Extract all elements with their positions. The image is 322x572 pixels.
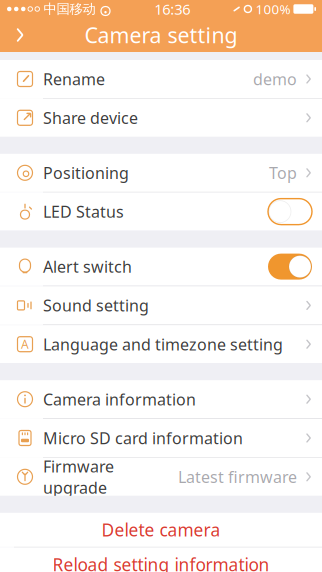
staticText: Top — [269, 162, 297, 183]
button[interactable]: Delete camera — [0, 513, 322, 547]
button[interactable]: Camera information — [0, 380, 322, 418]
staticText: Camera information — [43, 389, 196, 410]
staticText: Micro SD card information — [43, 427, 243, 449]
staticText: Alert switch — [43, 256, 132, 277]
button[interactable]: A — [0, 325, 322, 363]
staticText: Positioning — [43, 162, 129, 183]
button[interactable]: Rename — [0, 60, 322, 98]
button[interactable]: Micro SD card information — [0, 419, 322, 457]
button[interactable]: LED Status — [0, 193, 322, 231]
button[interactable]: Positioning — [0, 154, 322, 192]
button[interactable]: Sound setting — [0, 286, 322, 324]
staticText: LED Status — [43, 201, 124, 222]
staticText: 中国移动 — [43, 1, 95, 17]
button[interactable]: Alert switch — [0, 248, 322, 286]
staticText: Firmware upgrade — [43, 456, 114, 498]
staticText: Language and timezone setting — [43, 334, 283, 355]
staticText: Camera setting — [84, 21, 237, 49]
staticText: Rename — [43, 68, 105, 90]
staticText: Reload setting information — [52, 553, 269, 572]
staticText: Delete camera — [101, 518, 220, 541]
staticText: 16:36 — [154, 0, 190, 19]
button[interactable]: Firmware upgrade — [0, 458, 322, 496]
button[interactable]: Back — [0, 18, 40, 52]
staticText: Share device — [43, 107, 138, 128]
button[interactable]: Share device — [0, 99, 322, 137]
staticText: demo — [253, 68, 297, 90]
staticText: Sound setting — [43, 295, 149, 316]
staticText: A — [21, 336, 29, 352]
staticText: 100% — [255, 0, 290, 18]
staticText: Latest firmware — [178, 466, 297, 487]
button[interactable]: Reload setting information — [0, 548, 322, 572]
